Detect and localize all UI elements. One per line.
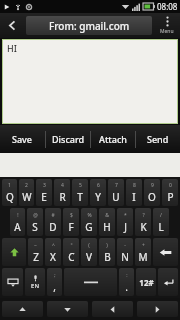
button[interactable]: ) (99, 238, 115, 266)
button[interactable]: # (45, 208, 61, 236)
staticText: 5 (79, 182, 82, 189)
button[interactable]: @ (27, 208, 43, 236)
staticText: * (124, 212, 127, 219)
staticText: V (86, 250, 92, 264)
button[interactable]: $ (63, 208, 79, 236)
button[interactable]: 0 (162, 179, 178, 206)
staticText: C (68, 250, 75, 264)
staticText: 0 (169, 182, 172, 189)
staticText: EN (31, 282, 39, 290)
staticText: / (160, 212, 162, 219)
button[interactable]: % (81, 208, 97, 236)
staticText: # (51, 212, 55, 219)
button[interactable]: ^ (45, 238, 61, 266)
staticText: 08:08 (157, 1, 178, 12)
staticText: P (167, 190, 174, 204)
button[interactable]: 6 (90, 179, 106, 206)
staticText: N (121, 250, 129, 264)
staticText: Y (95, 190, 101, 204)
button[interactable]: From: gmail.com (26, 16, 152, 35)
button[interactable]: Attach (91, 125, 135, 153)
button[interactable]: 9 (144, 179, 160, 206)
button[interactable]: Space (64, 268, 117, 296)
staticText: Attach (99, 133, 127, 145)
staticText: I (132, 190, 136, 204)
button[interactable]: Enter (158, 268, 178, 296)
button[interactable]: ? (135, 208, 151, 236)
staticText: U (112, 190, 120, 204)
staticText: H (103, 220, 111, 234)
button[interactable]: ( (81, 238, 97, 266)
button[interactable]: 5 (72, 179, 88, 206)
button[interactable]: 1 (2, 179, 17, 206)
staticText: & (105, 212, 109, 219)
staticText: @ (33, 212, 38, 219)
button[interactable]: + (135, 238, 151, 266)
staticText: : (126, 272, 128, 279)
staticText: D (49, 220, 57, 234)
button[interactable]: Menu (154, 13, 180, 38)
staticText: ; (54, 272, 56, 279)
staticText: Z (33, 250, 39, 264)
staticText: Discard (52, 133, 85, 145)
staticText: . (125, 280, 128, 294)
button[interactable]: ! (10, 208, 25, 236)
staticText: 2 (25, 182, 28, 189)
button[interactable]: 8 (126, 179, 142, 206)
button[interactable]: Right (137, 301, 178, 317)
button[interactable]: ° (63, 238, 79, 266)
button[interactable]: Up (2, 301, 43, 317)
staticText: 6 (97, 182, 100, 189)
button[interactable]: Symbols (136, 268, 156, 296)
button[interactable]: 2 (19, 179, 34, 206)
staticText: A (14, 220, 21, 234)
button[interactable]: * (117, 208, 133, 236)
staticText: ! (17, 212, 19, 219)
staticText: ( (88, 242, 90, 249)
button[interactable]: Voice input EN (25, 268, 45, 296)
button[interactable]: : (119, 268, 134, 296)
button[interactable]: Backspace (153, 238, 178, 266)
button[interactable]: / (153, 208, 169, 236)
button[interactable]: Down (47, 301, 88, 317)
button[interactable]: ~ (28, 238, 43, 266)
button[interactable]: Left (92, 301, 133, 317)
staticText: Menu (160, 28, 174, 35)
button[interactable]: Shift (2, 238, 26, 266)
staticText: ~ (34, 242, 37, 249)
button[interactable]: Hide keyboard (2, 268, 23, 296)
button[interactable]: - (117, 238, 133, 266)
staticText: ) (106, 242, 108, 249)
staticText: Save (12, 133, 33, 145)
button[interactable]: Back (0, 13, 24, 38)
staticText: 1 (8, 182, 11, 189)
button[interactable]: 7 (108, 179, 124, 206)
staticText: K (140, 220, 147, 234)
button[interactable]: Send (136, 125, 180, 153)
staticText: Send (147, 133, 169, 145)
button[interactable]: & (99, 208, 115, 236)
button[interactable]: ; (47, 268, 62, 296)
button[interactable]: Save (0, 125, 45, 153)
staticText: R (59, 190, 66, 204)
staticText: $ (70, 212, 73, 219)
staticText: S (32, 220, 38, 234)
staticText: Q (6, 190, 14, 204)
staticText: G (85, 220, 93, 234)
staticText: ? (142, 212, 145, 219)
staticText: T (77, 190, 83, 204)
staticText: X (50, 250, 56, 264)
button[interactable]: HI (2, 39, 178, 124)
button[interactable]: Discard (46, 125, 90, 153)
staticText: 4 (61, 182, 64, 189)
staticText: J (124, 220, 127, 234)
button[interactable]: 3 (36, 179, 52, 206)
staticText: ^ (52, 242, 55, 249)
button[interactable]: 4 (54, 179, 70, 206)
staticText: E (41, 190, 47, 204)
staticText: M (138, 250, 148, 264)
staticText: From: gmail.com (49, 19, 130, 33)
staticText: 9 (151, 182, 154, 189)
staticText: 3 (43, 182, 46, 189)
